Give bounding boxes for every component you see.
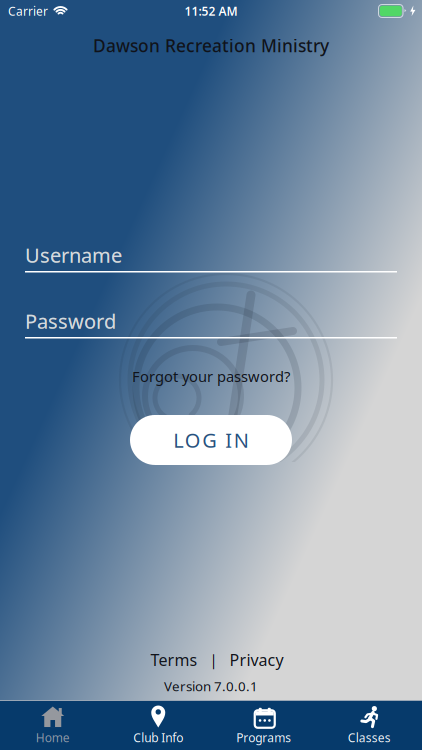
textField[interactable]: Password bbox=[25, 308, 397, 334]
button[interactable]: Classes bbox=[316, 701, 422, 750]
staticText: Club Info bbox=[133, 729, 183, 745]
staticText: Classes bbox=[348, 729, 391, 745]
button[interactable]: Club Info bbox=[105, 701, 211, 750]
staticText: Password bbox=[25, 308, 116, 334]
staticText: Privacy bbox=[229, 649, 283, 670]
staticText: Username bbox=[25, 242, 122, 268]
textField[interactable]: Username bbox=[25, 242, 397, 268]
button[interactable]: LOG IN bbox=[130, 415, 292, 465]
staticText: Forgot your password? bbox=[132, 366, 290, 386]
staticText: 11:52 AM bbox=[184, 3, 237, 19]
staticText: Version 7.0.0.1 bbox=[164, 677, 258, 695]
staticText: Carrier bbox=[8, 3, 48, 19]
staticText: Home bbox=[36, 729, 70, 745]
staticText: Dawson Recreation Ministry bbox=[93, 34, 329, 57]
staticText: Password bbox=[25, 308, 116, 334]
staticText: LOG IN bbox=[173, 427, 249, 453]
staticText: Username bbox=[25, 242, 122, 268]
button[interactable]: Terms bbox=[150, 649, 197, 670]
button[interactable]: Home bbox=[0, 701, 105, 750]
staticText: Programs bbox=[236, 729, 291, 745]
button[interactable]: Privacy bbox=[229, 649, 283, 670]
staticText: Terms bbox=[150, 649, 197, 670]
staticText: | bbox=[209, 650, 217, 669]
button[interactable]: Programs bbox=[211, 701, 316, 750]
button[interactable]: Forgot your password? bbox=[132, 366, 290, 386]
